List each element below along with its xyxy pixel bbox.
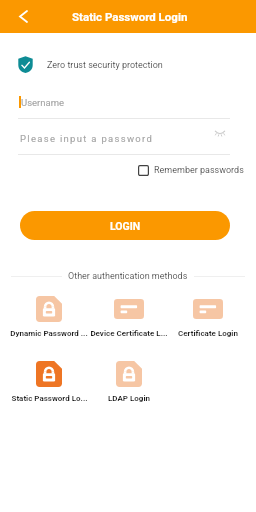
button[interactable]: Back [9, 3, 37, 31]
staticText: Static Password Lo... [11, 394, 88, 403]
staticText: Remember passwords [154, 165, 244, 176]
staticText: Certificate Login [178, 329, 238, 338]
button[interactable]: Show password [211, 123, 229, 141]
staticText: Other authentication methods [68, 271, 188, 282]
staticText: Device Certificate L... [90, 329, 167, 338]
button[interactable]: Certificate Login [168, 296, 247, 338]
staticText: Dynamic Password ... [10, 329, 88, 338]
staticText: Username [21, 97, 65, 108]
button[interactable]: Static Password Lo... [9, 361, 89, 403]
button[interactable]: LDAP Login [89, 361, 168, 403]
button[interactable]: Dynamic Password ... [9, 296, 89, 338]
staticText: LDAP Login [108, 394, 150, 403]
staticText: Static Password Login [72, 10, 188, 23]
button[interactable]: LOGIN [20, 211, 230, 240]
staticText: Zero trust security protection [47, 60, 163, 71]
staticText: LOGIN [110, 220, 141, 232]
staticText: Please input a password [20, 133, 154, 144]
button[interactable]: Remember passwords [138, 165, 244, 176]
button[interactable]: Device Certificate L... [89, 296, 168, 338]
